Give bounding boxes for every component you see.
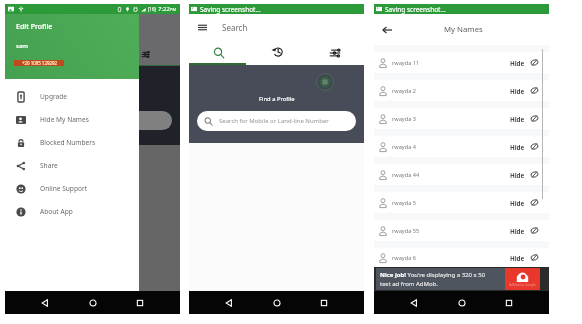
staticText: Hide: [510, 87, 525, 95]
staticText: Share: [40, 161, 58, 170]
staticText: Find a Profile: [259, 95, 295, 103]
staticText: sam: [16, 42, 29, 50]
staticText: Search for Mobile or Land-line Number: [219, 117, 329, 125]
button[interactable]: History: [248, 40, 306, 65]
staticText: PM: [170, 7, 177, 12]
staticText: rwayda 4: [392, 143, 416, 151]
staticText: Blocked Numbers: [40, 138, 96, 147]
button[interactable]: Recents: [501, 295, 517, 311]
staticText: rwayda 6: [392, 254, 416, 262]
staticText: 7:22: [158, 5, 170, 13]
staticText: Upgrade: [40, 92, 67, 101]
staticText: rwayda 3: [392, 115, 416, 123]
staticText: rwayda 44: [392, 171, 420, 179]
staticText: rwayda 55: [392, 227, 420, 235]
staticText: +20 1095 129292: [22, 60, 57, 66]
button[interactable]: rwayda 6: [374, 248, 549, 267]
staticText: Saving screenshot...: [385, 5, 446, 14]
staticText: Hide: [510, 143, 525, 151]
staticText: Online Support: [40, 184, 88, 193]
button[interactable]: rwayda 5: [374, 192, 549, 213]
button[interactable]: Recents: [316, 295, 332, 311]
button[interactable]: Upgrade: [5, 85, 139, 108]
button[interactable]: Home: [85, 295, 101, 311]
button[interactable]: Dial pad: [316, 73, 334, 91]
staticText: rwayda 5: [392, 199, 416, 207]
button[interactable]: Filters: [306, 40, 364, 65]
staticText: Hide: [510, 254, 525, 262]
button[interactable]: rwayda 4: [374, 136, 549, 157]
staticText: Hide: [510, 227, 525, 235]
button[interactable]: Online Support: [5, 177, 139, 200]
staticText: Hide: [510, 171, 525, 179]
button[interactable]: rwayda 55: [374, 220, 549, 241]
staticText: Hide My Names: [40, 115, 89, 124]
staticText: test ad from AdMob.: [380, 280, 438, 288]
button[interactable]: Open navigation drawer: [196, 21, 209, 34]
staticText: Hide: [510, 199, 525, 207]
button[interactable]: Recents: [132, 295, 148, 311]
staticText: Edit Profile: [16, 22, 53, 32]
button[interactable]: About App: [5, 200, 139, 223]
staticText: rwayda 2: [392, 87, 416, 95]
button[interactable]: Home: [269, 295, 285, 311]
button[interactable]: Back: [37, 295, 53, 311]
button[interactable]: Search for Mobile or Land-line Number: [197, 111, 356, 131]
button[interactable]: Share: [5, 154, 139, 177]
button[interactable]: +20 1095 129292: [14, 60, 64, 66]
button[interactable]: Back: [379, 22, 395, 38]
staticText: AdMob by Google: [509, 283, 536, 287]
button[interactable]: rwayda 11: [374, 52, 549, 73]
button[interactable]: rwayda 44: [374, 164, 549, 185]
staticText: You're displaying a 320 x 50: [406, 271, 486, 279]
staticText: Nice job!: [380, 271, 406, 279]
staticText: About App: [40, 207, 73, 216]
staticText: Saving screenshot...: [200, 5, 261, 14]
staticText: rwayda 11: [392, 59, 420, 67]
button[interactable]: Back: [406, 295, 422, 311]
staticText: Hide: [510, 115, 525, 123]
button[interactable]: Search: [189, 40, 248, 65]
button[interactable]: Blocked Numbers: [5, 131, 139, 154]
button[interactable]: Nice job!: [374, 267, 549, 291]
button[interactable]: Home: [454, 295, 470, 311]
button[interactable]: Hide My Names: [5, 108, 139, 131]
button[interactable]: Back: [221, 295, 237, 311]
staticText: Search: [222, 22, 248, 33]
staticText: Hide: [510, 59, 525, 67]
staticText: (16): [148, 6, 156, 12]
button[interactable]: rwayda 2: [374, 80, 549, 101]
button[interactable]: rwayda 3: [374, 108, 549, 129]
staticText: My Names: [444, 24, 483, 35]
